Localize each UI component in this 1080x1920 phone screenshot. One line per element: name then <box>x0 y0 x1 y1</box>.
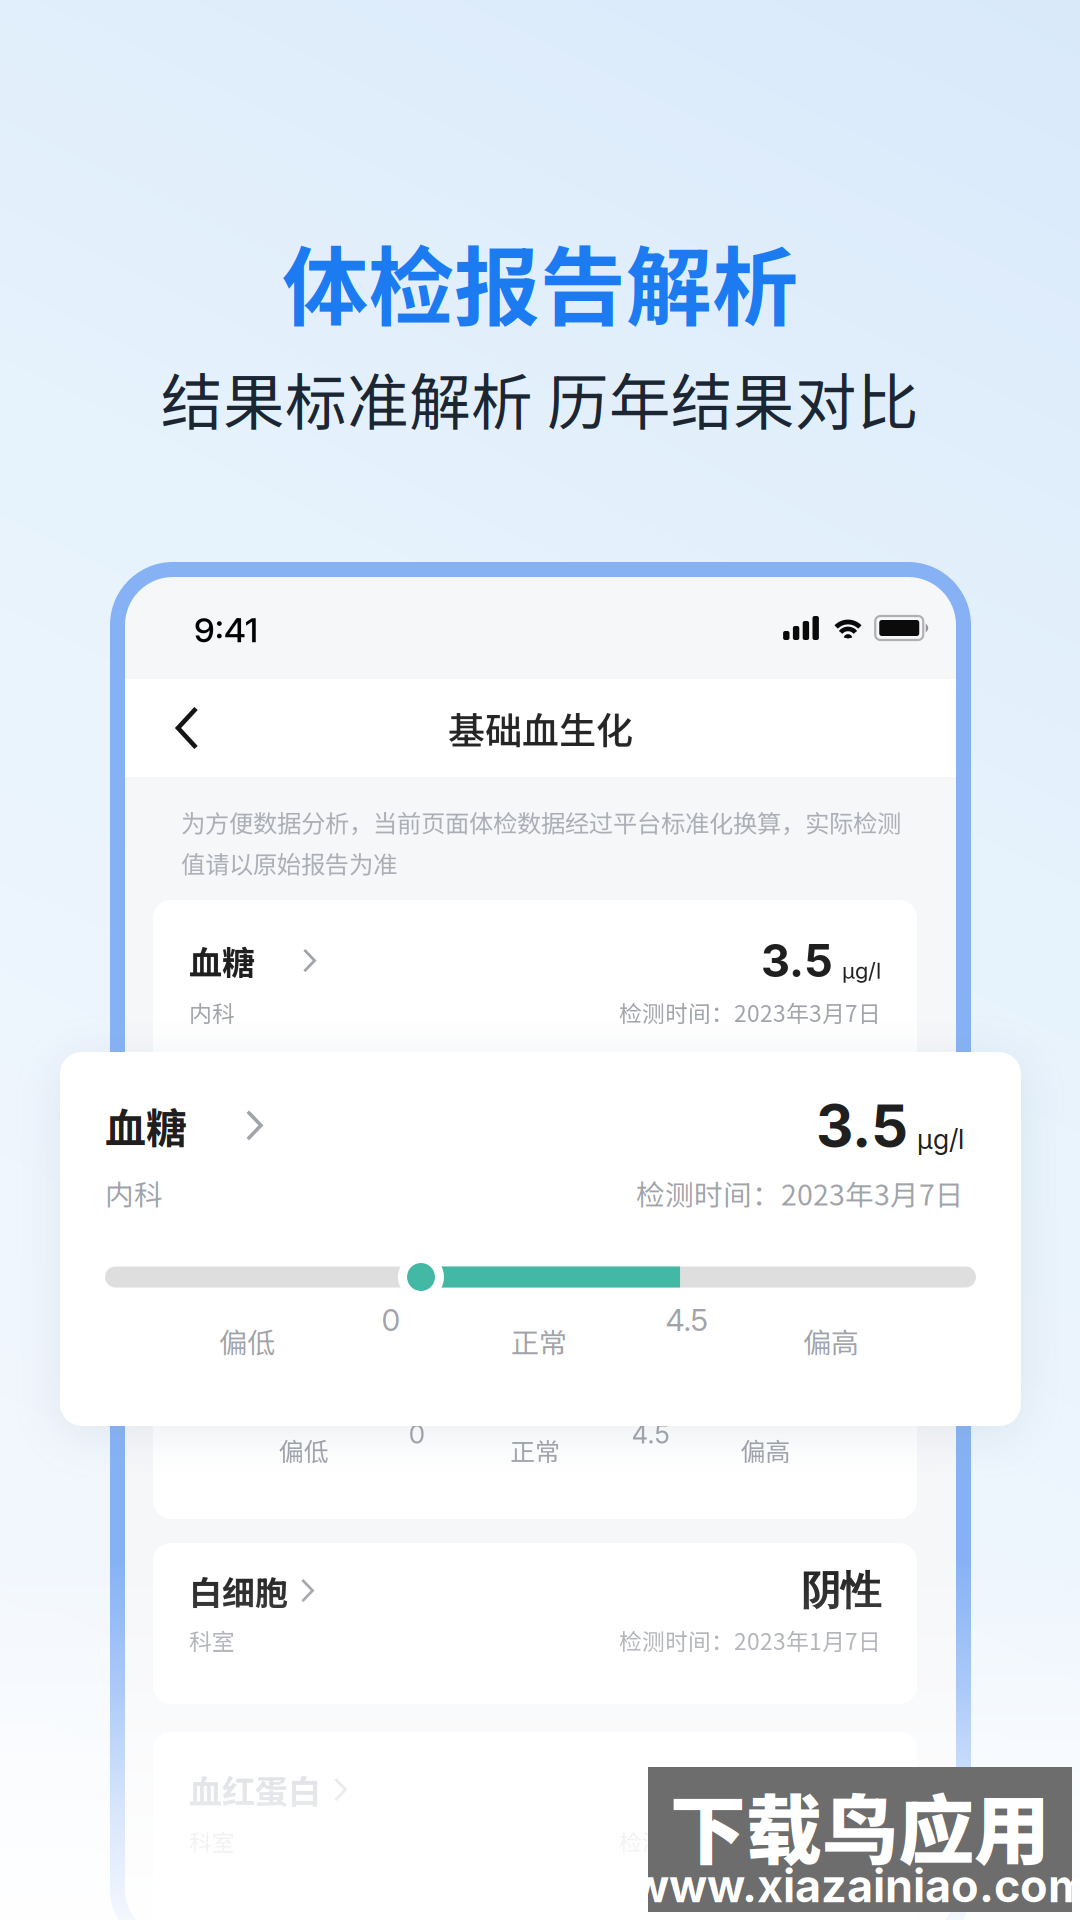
staticText: 白细胞 <box>189 1567 288 1614</box>
staticText: 0 <box>409 1418 425 1450</box>
staticText: 正常 <box>511 1321 567 1361</box>
staticText: 9:41 <box>194 609 258 650</box>
staticText: 4.5 <box>632 1418 670 1450</box>
staticText: 偏高 <box>740 1432 790 1468</box>
staticText: 偏高 <box>803 1321 859 1361</box>
staticText: 血红蛋白 <box>189 1766 321 1813</box>
staticText: μg/l <box>842 957 881 984</box>
staticText: μg/l <box>842 1786 881 1813</box>
staticText: 检测时间：2023年3月7日 <box>619 996 881 1029</box>
staticText: 正常 <box>510 1432 560 1468</box>
staticText: 3.5 <box>816 1090 908 1160</box>
staticText: μg/l <box>917 1123 964 1156</box>
staticText: 阴性 <box>801 1565 881 1616</box>
staticText: 内科 <box>189 996 235 1029</box>
staticText: 血糖 <box>105 1096 187 1155</box>
staticText: 检测时间：2023年3月7日 <box>636 1172 964 1214</box>
staticText: 内科 <box>105 1172 163 1214</box>
staticText: 7.5 <box>768 1762 833 1817</box>
staticText: www.xiazainiao.com <box>631 1859 1080 1913</box>
staticText: 3.5 <box>761 933 833 988</box>
staticText: 为方便数据分析，当前页面体检数据经过平台标准化换算，实际检测 <box>181 804 901 840</box>
staticText: 4.5 <box>665 1302 708 1338</box>
staticText: 结果标准解析 历年结果对比 <box>161 353 919 443</box>
staticText: 偏低 <box>219 1321 275 1361</box>
staticText: 体检报告解析 <box>282 219 798 343</box>
staticText: 血糖 <box>189 937 255 984</box>
staticText: 下载鸟应用 <box>670 1770 1050 1880</box>
staticText: 偏低 <box>279 1432 329 1468</box>
staticText: 值请以原始报告为准 <box>181 845 397 881</box>
staticText: 科室 <box>189 1825 235 1858</box>
staticText: 0 <box>381 1302 400 1338</box>
staticText: 科室 <box>189 1624 235 1657</box>
button[interactable]: 返回 <box>145 686 229 770</box>
staticText: 检测时间：2023年1月7日 <box>619 1825 881 1858</box>
staticText: 检测时间：2023年1月7日 <box>619 1624 881 1657</box>
staticText: 基础血生化 <box>448 701 633 755</box>
